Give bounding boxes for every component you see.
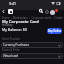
staticText: 9:41 xyxy=(9,1,16,6)
button[interactable]: Search xyxy=(38,8,44,14)
button[interactable]: Back xyxy=(0,8,6,14)
button[interactable]: Help xyxy=(44,9,50,15)
staticText: Holiday xyxy=(2,23,13,27)
button[interactable]: Account xyxy=(49,9,55,15)
button[interactable]: Currency Purchases xyxy=(1,42,63,48)
button[interactable]: App icon xyxy=(8,9,13,14)
staticText: My Balance: $0 xyxy=(2,27,27,32)
staticText: Currency Purchases xyxy=(3,43,29,47)
staticText: Points & Perks xyxy=(2,48,20,52)
staticText: Virtual card xyxy=(3,54,19,58)
button[interactable]: Virtual card xyxy=(1,53,63,59)
staticText: My Corporate Card xyxy=(2,19,39,24)
staticText: Buy Online xyxy=(48,29,62,33)
button[interactable]: Buy Online xyxy=(47,28,62,34)
staticText: Select Provider xyxy=(2,37,21,41)
staticText: Home › Marketplace › Corporate cards › D… xyxy=(2,16,63,20)
